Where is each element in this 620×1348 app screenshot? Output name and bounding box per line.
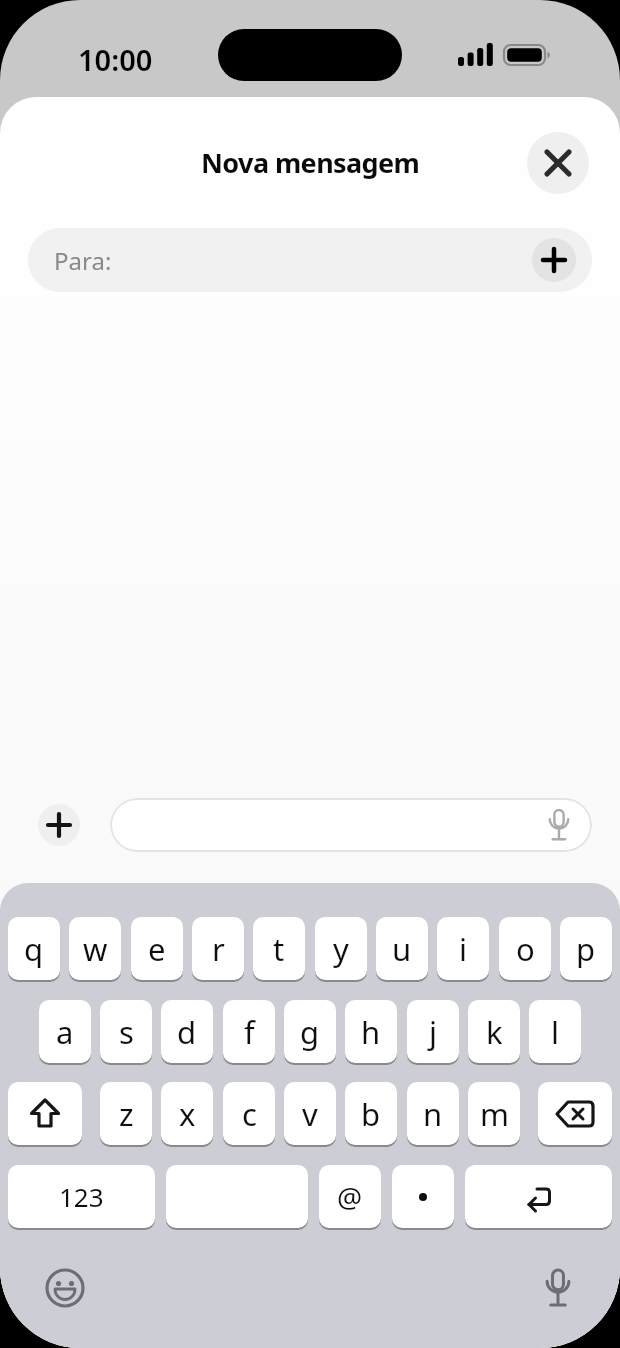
staticText: p [576, 928, 596, 970]
button[interactable]: h [345, 1000, 397, 1065]
staticText: o [516, 928, 535, 970]
button[interactable]: Para: [28, 228, 592, 292]
staticText: 123 [59, 1179, 104, 1214]
staticText: Para: [54, 244, 112, 277]
staticText: v [302, 1093, 318, 1135]
staticText: u [392, 928, 412, 970]
button[interactable]: @ [319, 1165, 381, 1230]
staticText: y [333, 928, 349, 970]
staticText: i [459, 928, 467, 970]
button[interactable]: k [468, 1000, 520, 1065]
button[interactable]: u [376, 917, 428, 982]
button[interactable]: n [407, 1082, 459, 1147]
button[interactable]: g [284, 1000, 336, 1065]
button[interactable]: l [529, 1000, 581, 1065]
staticText: h [361, 1011, 381, 1053]
button[interactable] [465, 1165, 612, 1230]
button[interactable]: r [192, 917, 244, 982]
staticText: f [244, 1011, 255, 1053]
button[interactable]: i [437, 917, 489, 982]
button[interactable]: a [39, 1000, 91, 1065]
staticText: n [423, 1093, 443, 1135]
button[interactable] [538, 1082, 612, 1147]
button[interactable]: c [223, 1082, 275, 1147]
button[interactable]: s [100, 1000, 152, 1065]
button[interactable]: z [100, 1082, 152, 1147]
button[interactable]: d [161, 1000, 213, 1065]
button[interactable]: 123 [8, 1165, 155, 1230]
staticText: d [177, 1011, 197, 1053]
staticText: @ [337, 1178, 363, 1216]
button[interactable]: w [69, 917, 121, 982]
staticText: l [551, 1011, 559, 1053]
staticText: g [300, 1011, 320, 1053]
button[interactable] [43, 1266, 87, 1310]
staticText: c [242, 1093, 257, 1135]
button[interactable]: e [131, 917, 183, 982]
button[interactable] [392, 1165, 454, 1230]
staticText: q [24, 928, 44, 970]
button[interactable] [166, 1165, 308, 1230]
staticText: e [148, 928, 166, 970]
button[interactable] [527, 132, 589, 194]
staticText: j [429, 1011, 437, 1053]
staticText: r [212, 928, 225, 970]
button[interactable]: b [345, 1082, 397, 1147]
staticText: w [83, 928, 108, 970]
button[interactable] [8, 1082, 82, 1147]
button[interactable] [38, 804, 80, 846]
button[interactable]: t [253, 917, 305, 982]
button[interactable]: f [223, 1000, 275, 1065]
button[interactable] [536, 1266, 580, 1310]
button[interactable]: o [499, 917, 551, 982]
button[interactable]: j [407, 1000, 459, 1065]
button[interactable]: x [161, 1082, 213, 1147]
staticText: b [361, 1093, 381, 1135]
staticText: t [273, 928, 285, 970]
button[interactable]: v [284, 1082, 336, 1147]
button[interactable]: y [315, 917, 367, 982]
staticText: s [119, 1011, 134, 1053]
button[interactable]: p [560, 917, 612, 982]
staticText: m [480, 1093, 509, 1135]
staticText: 10:00 [78, 40, 153, 76]
staticText: z [119, 1093, 134, 1135]
button[interactable]: q [8, 917, 60, 982]
staticText: Nova mensagem [201, 144, 420, 181]
staticText: k [486, 1011, 503, 1053]
staticText: a [56, 1011, 74, 1053]
button[interactable] [110, 798, 592, 852]
staticText: x [179, 1093, 196, 1135]
button[interactable]: m [468, 1082, 520, 1147]
button[interactable] [532, 238, 576, 282]
